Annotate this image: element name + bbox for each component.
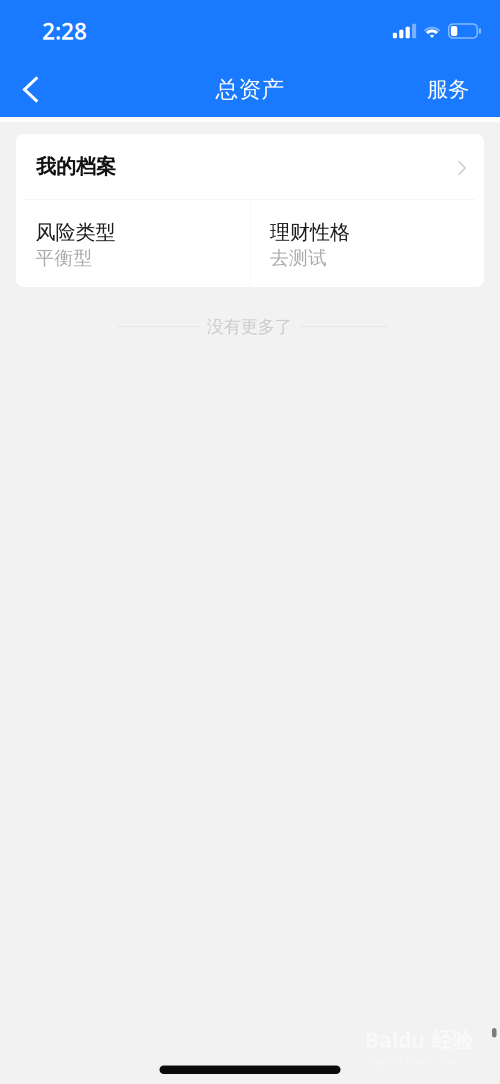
- staticText: 我的档案: [36, 154, 116, 179]
- button[interactable]: 我的档案: [16, 134, 484, 199]
- button[interactable]: Back: [0, 63, 52, 115]
- staticText: 没有更多了: [207, 316, 292, 337]
- staticText: 2:28: [42, 16, 87, 46]
- staticText: 风险类型: [35, 220, 115, 245]
- staticText: 总资产: [215, 76, 284, 103]
- button[interactable]: 理财性格: [250, 200, 484, 287]
- staticText: 服务: [427, 76, 469, 103]
- button[interactable]: 服务: [413, 63, 500, 115]
- staticText: 去测试: [270, 247, 327, 269]
- button[interactable]: 风险类型: [16, 200, 249, 287]
- staticText: 理财性格: [270, 220, 350, 245]
- staticText: 平衡型: [35, 247, 92, 269]
